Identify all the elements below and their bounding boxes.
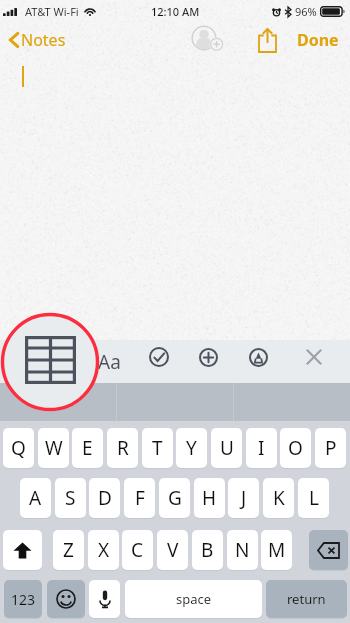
button[interactable]: Table bbox=[1, 313, 99, 411]
staticText: S bbox=[65, 485, 76, 511]
staticText: L bbox=[309, 485, 319, 511]
button[interactable]: T bbox=[142, 428, 173, 468]
button[interactable]: J bbox=[228, 478, 259, 518]
staticText: K bbox=[273, 485, 285, 511]
button[interactable]: 123 bbox=[4, 580, 42, 618]
staticText: C bbox=[131, 537, 144, 563]
button[interactable]: Z bbox=[53, 530, 84, 570]
staticText: P bbox=[325, 435, 337, 461]
button[interactable]: Backspace bbox=[309, 530, 348, 570]
staticText: N bbox=[235, 537, 250, 563]
staticText: space bbox=[176, 590, 212, 608]
button[interactable]: N bbox=[227, 530, 258, 570]
button[interactable]: R bbox=[107, 428, 138, 468]
staticText: X bbox=[98, 537, 110, 563]
button[interactable]: Hide keyboard bbox=[297, 340, 331, 374]
staticText: M bbox=[268, 537, 286, 563]
button[interactable]: Notes bbox=[0, 29, 72, 51]
staticText: O bbox=[288, 435, 303, 461]
button[interactable]: Add people bbox=[190, 22, 227, 58]
staticText: F bbox=[135, 485, 145, 511]
staticText: 96% bbox=[295, 4, 317, 19]
button[interactable]: S bbox=[55, 478, 86, 518]
button[interactable]: H bbox=[194, 478, 225, 518]
button[interactable]: E bbox=[72, 428, 103, 468]
staticText: H bbox=[202, 485, 217, 511]
button[interactable]: Emoji bbox=[47, 580, 85, 618]
staticText: Q bbox=[11, 435, 26, 461]
button[interactable]: X bbox=[88, 530, 119, 570]
button[interactable]: C bbox=[122, 530, 153, 570]
button[interactable]: Share bbox=[253, 26, 281, 54]
button[interactable]: V bbox=[157, 530, 188, 570]
button[interactable]: A bbox=[20, 478, 51, 518]
button[interactable]: Aa bbox=[90, 340, 128, 383]
staticText: Notes bbox=[21, 29, 66, 51]
staticText: B bbox=[201, 537, 214, 563]
button[interactable]: O bbox=[280, 428, 311, 468]
button[interactable]: Markup bbox=[241, 340, 275, 374]
staticText: J bbox=[241, 485, 247, 511]
staticText: U bbox=[220, 435, 234, 461]
button[interactable]: Y bbox=[176, 428, 207, 468]
button[interactable]: Dictation bbox=[89, 580, 120, 618]
staticText: R bbox=[117, 435, 129, 461]
staticText: 12:10 AM bbox=[151, 4, 200, 19]
button[interactable]: G bbox=[159, 478, 190, 518]
staticText: D bbox=[98, 485, 112, 511]
button[interactable]: Done bbox=[294, 22, 342, 58]
staticText: E bbox=[82, 435, 93, 461]
button[interactable]: Shift bbox=[3, 530, 42, 570]
button[interactable]: space bbox=[125, 580, 262, 618]
staticText: I bbox=[258, 435, 265, 461]
button[interactable]: K bbox=[263, 478, 294, 518]
button[interactable]: W bbox=[38, 428, 69, 468]
button[interactable]: B bbox=[192, 530, 223, 570]
button[interactable]: Checklist bbox=[142, 340, 176, 374]
button[interactable]: Add attachment bbox=[191, 340, 225, 374]
button[interactable]: D bbox=[89, 478, 120, 518]
button[interactable]: return bbox=[266, 580, 347, 618]
staticText: Aa bbox=[98, 349, 121, 375]
staticText: Z bbox=[63, 537, 74, 563]
button[interactable]: P bbox=[315, 428, 346, 468]
staticText: Y bbox=[186, 435, 197, 461]
button[interactable]: M bbox=[261, 530, 292, 570]
staticText: W bbox=[45, 435, 63, 461]
button[interactable]: I bbox=[246, 428, 277, 468]
staticText: AT&T Wi-Fi bbox=[25, 4, 79, 19]
button[interactable]: F bbox=[124, 478, 155, 518]
staticText: T bbox=[152, 435, 163, 461]
staticText: V bbox=[167, 537, 179, 563]
button[interactable]: L bbox=[298, 478, 329, 518]
button[interactable]: Q bbox=[3, 428, 34, 468]
staticText: A bbox=[29, 485, 42, 511]
button[interactable]: U bbox=[211, 428, 242, 468]
staticText: Done bbox=[297, 29, 339, 51]
staticText: 123 bbox=[11, 590, 36, 609]
staticText: G bbox=[168, 485, 182, 511]
staticText: return bbox=[287, 590, 326, 608]
